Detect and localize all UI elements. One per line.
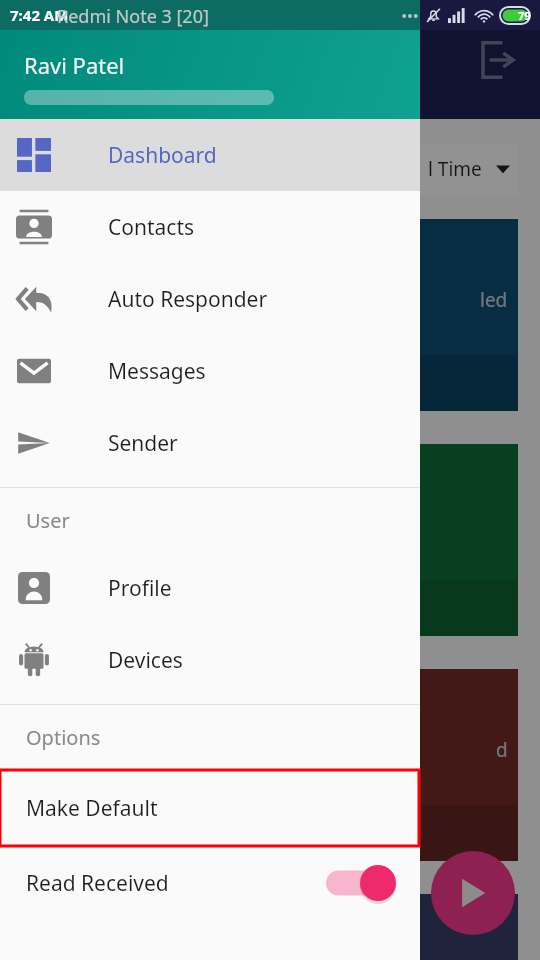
button[interactable]: Sender [0,407,420,479]
staticText: d [496,737,508,763]
staticText: l Time [428,156,482,182]
staticText: 7:42 AM [10,5,69,25]
staticText: User [26,507,70,534]
button[interactable]: Auto Responder [0,263,420,335]
staticText: Contacts [108,213,195,242]
button[interactable]: l Time [378,143,518,195]
staticText: 79 [518,8,531,23]
staticText: Read Received [26,869,169,898]
staticText: Sender [108,429,178,458]
button[interactable]: fo [12,444,518,636]
button[interactable]: Read Received [0,847,420,919]
staticText: fo [14,370,33,396]
button[interactable]: Contacts [0,191,420,263]
staticText: Make Default [26,794,158,823]
staticText: Auto Responder [108,285,268,314]
staticText: Devices [108,646,183,675]
staticText: Profile [108,574,172,603]
button[interactable]: Logout [472,34,524,86]
button[interactable]: led [12,219,518,411]
staticText: Options [26,724,101,751]
button[interactable]: Devices [0,624,420,696]
staticText: fo [14,820,33,846]
staticText: Messages [108,357,206,386]
button[interactable]: Make Default [0,769,420,847]
button[interactable]: Play [431,851,515,935]
staticText: led [480,287,508,313]
staticText: Dashboard [108,141,217,170]
button[interactable]: d [12,669,518,861]
button[interactable]: Dashboard [0,119,420,191]
staticText: fo [14,595,33,621]
button[interactable]: Messages [0,335,420,407]
staticText: Ravi Patel [24,50,125,80]
button[interactable]: Profile [0,552,420,624]
staticText: Redmi Note 3 [20] [57,4,209,29]
